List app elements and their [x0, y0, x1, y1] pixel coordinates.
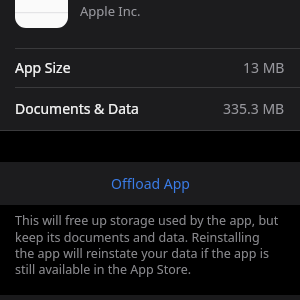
staticText: This will free up storage used by the ap… — [15, 212, 280, 277]
staticText: Apple Inc. — [80, 2, 141, 20]
staticText: Documents & Data — [15, 99, 139, 118]
button[interactable]: Offload App — [0, 162, 300, 205]
button[interactable]: App Size — [0, 48, 300, 87]
staticText: App Size — [15, 58, 71, 77]
staticText: 335.3 MB — [223, 99, 285, 118]
button[interactable]: Apple Inc. — [0, 0, 300, 48]
button[interactable]: Documents & Data — [0, 87, 300, 130]
staticText: 13 MB — [243, 58, 285, 77]
staticText: Offload App — [111, 174, 190, 193]
